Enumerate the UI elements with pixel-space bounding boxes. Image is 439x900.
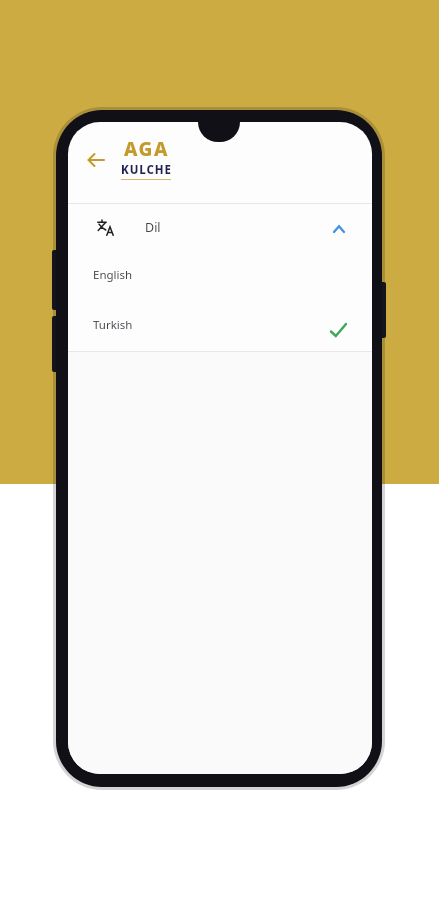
staticText: English <box>93 267 133 283</box>
staticText: Dil <box>145 219 161 236</box>
staticText: AGA <box>124 136 169 162</box>
button[interactable]: English <box>68 251 372 299</box>
staticText: Turkish <box>93 317 133 333</box>
button[interactable]: Turkish <box>68 301 372 349</box>
staticText: KULCHE <box>121 162 172 178</box>
button[interactable] <box>76 140 116 180</box>
button[interactable]: Dil <box>68 204 372 251</box>
